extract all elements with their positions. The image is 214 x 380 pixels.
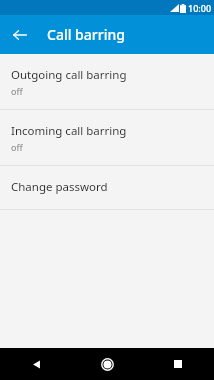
staticText: 10:00 [188,2,212,14]
button[interactable]: Outgoing call barring [0,54,214,109]
button[interactable]: Back [21,349,51,379]
staticText: Incoming call barring [11,123,127,139]
button[interactable]: Recent apps [163,349,193,379]
staticText: off [11,85,23,97]
button[interactable]: Home [92,349,122,379]
staticText: Call barring [47,25,125,44]
button[interactable]: Change password [0,166,214,209]
button[interactable]: Navigate up [6,21,34,49]
button[interactable]: Incoming call barring [0,110,214,165]
staticText: Outgoing call barring [11,67,127,83]
staticText: off [11,141,23,153]
staticText: Change password [11,179,108,195]
